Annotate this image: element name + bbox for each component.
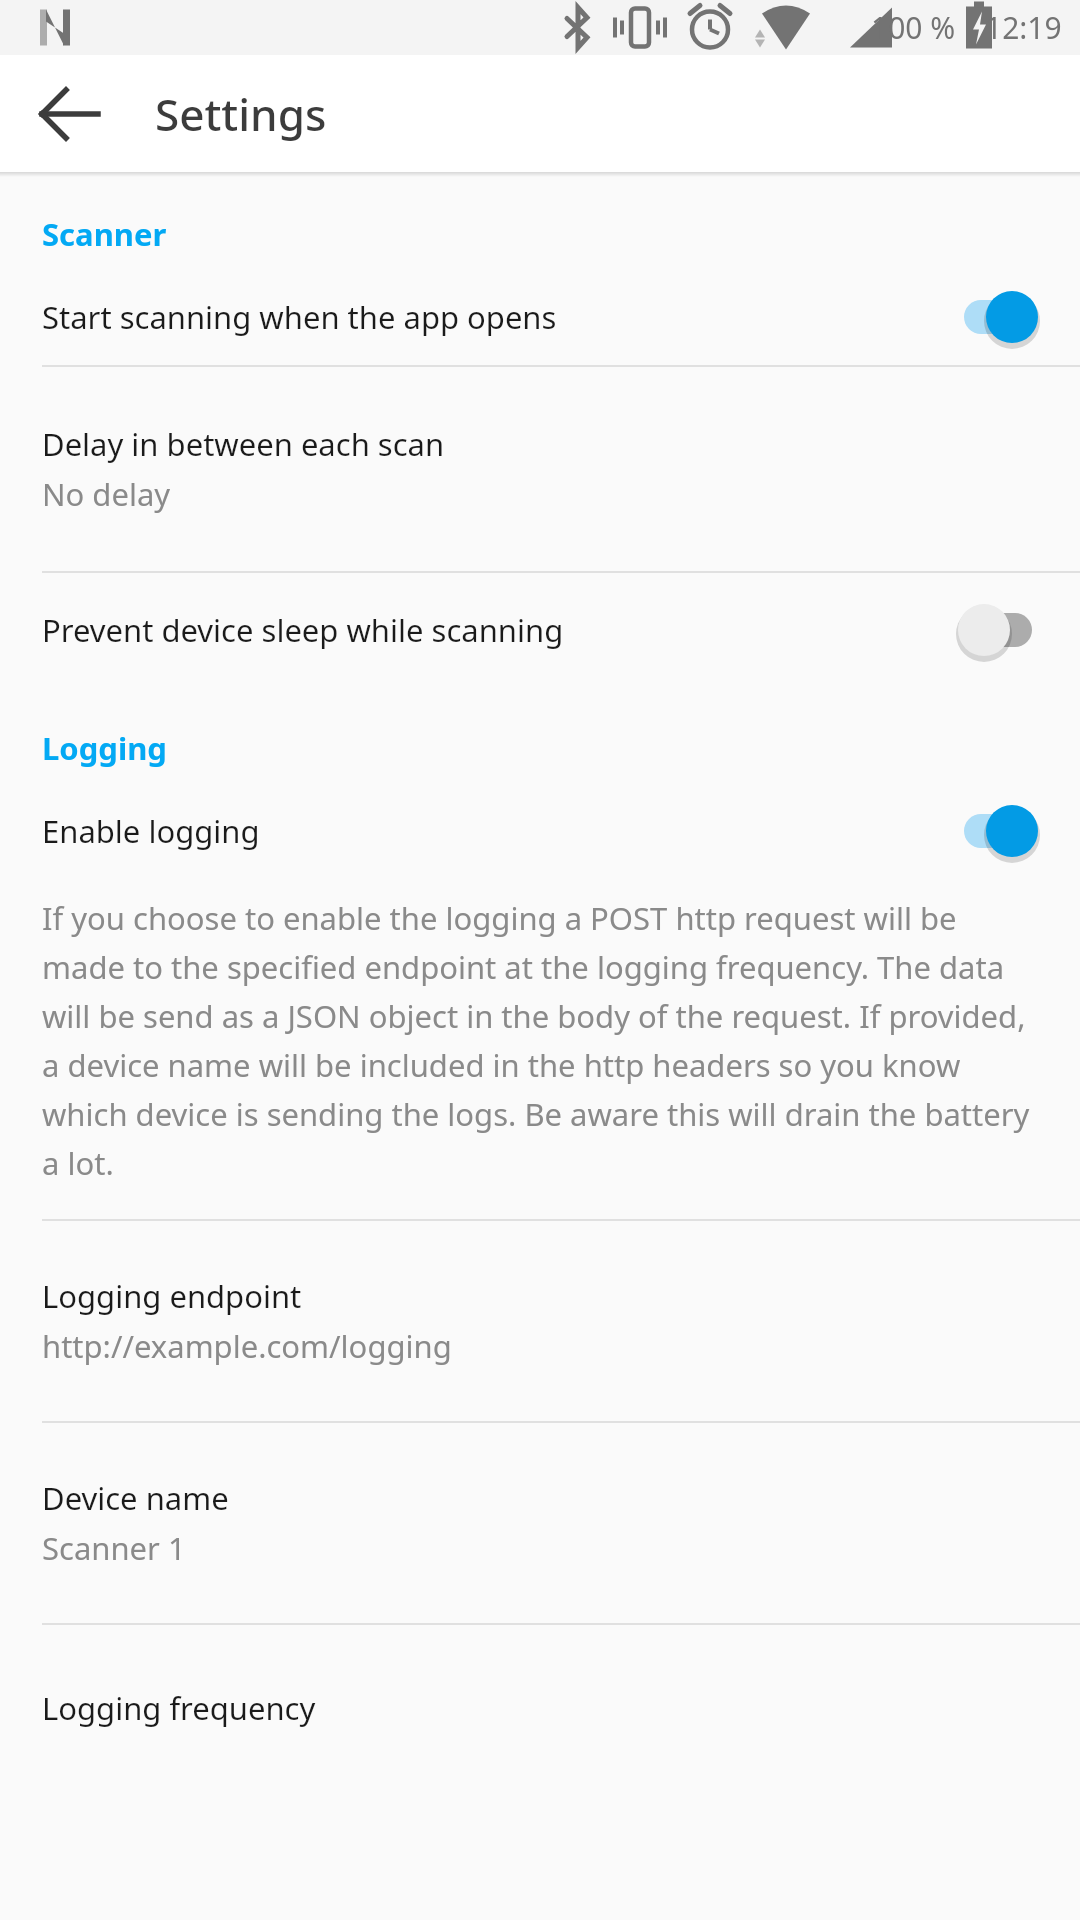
staticText: Settings — [155, 84, 327, 144]
staticText: If you choose to enable the logging a PO… — [42, 897, 1042, 1185]
staticText: 100 % — [871, 7, 956, 48]
staticText: Prevent device sleep while scanning — [42, 609, 564, 651]
button[interactable]: Prevent device sleep while scanning — [0, 573, 1080, 687]
staticText: Scanner 1 — [42, 1527, 186, 1569]
staticText: Delay in between each scan — [42, 423, 445, 465]
button[interactable]: Delay in between each scan — [0, 367, 1080, 571]
staticText: Enable logging — [42, 810, 260, 852]
staticText: Logging — [42, 727, 167, 769]
staticText: No delay — [42, 473, 171, 515]
staticText: 12:19 — [985, 7, 1062, 48]
button[interactable]: Device name — [0, 1423, 1080, 1623]
button[interactable]: Back — [28, 72, 112, 156]
button[interactable]: Logging endpoint — [0, 1221, 1080, 1421]
button[interactable]: Enable logging — [0, 783, 1080, 879]
staticText: http://example.com/logging — [42, 1325, 452, 1367]
staticText: Start scanning when the app opens — [42, 296, 557, 338]
button[interactable]: Start scanning when the app opens — [0, 269, 1080, 365]
button[interactable]: Logging frequency — [0, 1625, 1080, 1735]
staticText: Logging frequency — [42, 1687, 316, 1729]
staticText: Scanner — [42, 213, 167, 255]
staticText: Device name — [42, 1477, 229, 1519]
staticText: Logging endpoint — [42, 1275, 302, 1317]
